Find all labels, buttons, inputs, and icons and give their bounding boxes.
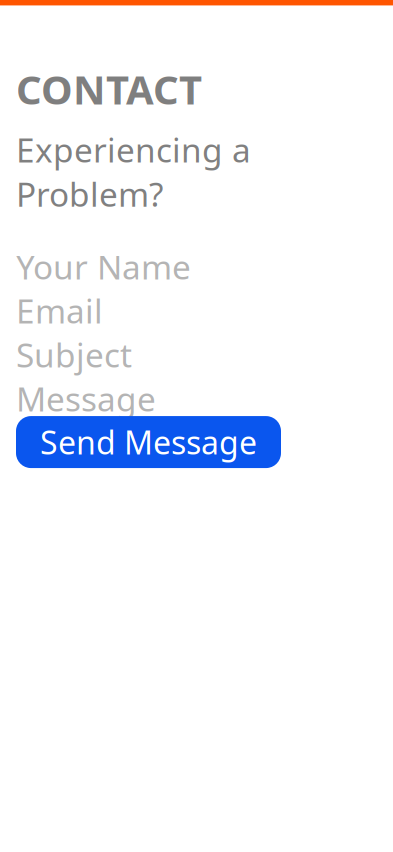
staticText: Subject [16, 332, 132, 377]
staticText: Your Name [16, 244, 191, 289]
staticText: Experiencing a Problem? [16, 127, 251, 216]
button[interactable]: Your Name [16, 249, 377, 284]
button[interactable]: Subject [16, 337, 377, 372]
button[interactable]: Email [16, 293, 377, 328]
staticText: CONTACT [16, 62, 202, 115]
staticText: Message [16, 376, 156, 421]
staticText: Email [16, 288, 103, 333]
staticText: Send Message [40, 421, 257, 463]
button[interactable]: Send Message [16, 416, 281, 468]
button[interactable]: Message [16, 381, 377, 416]
